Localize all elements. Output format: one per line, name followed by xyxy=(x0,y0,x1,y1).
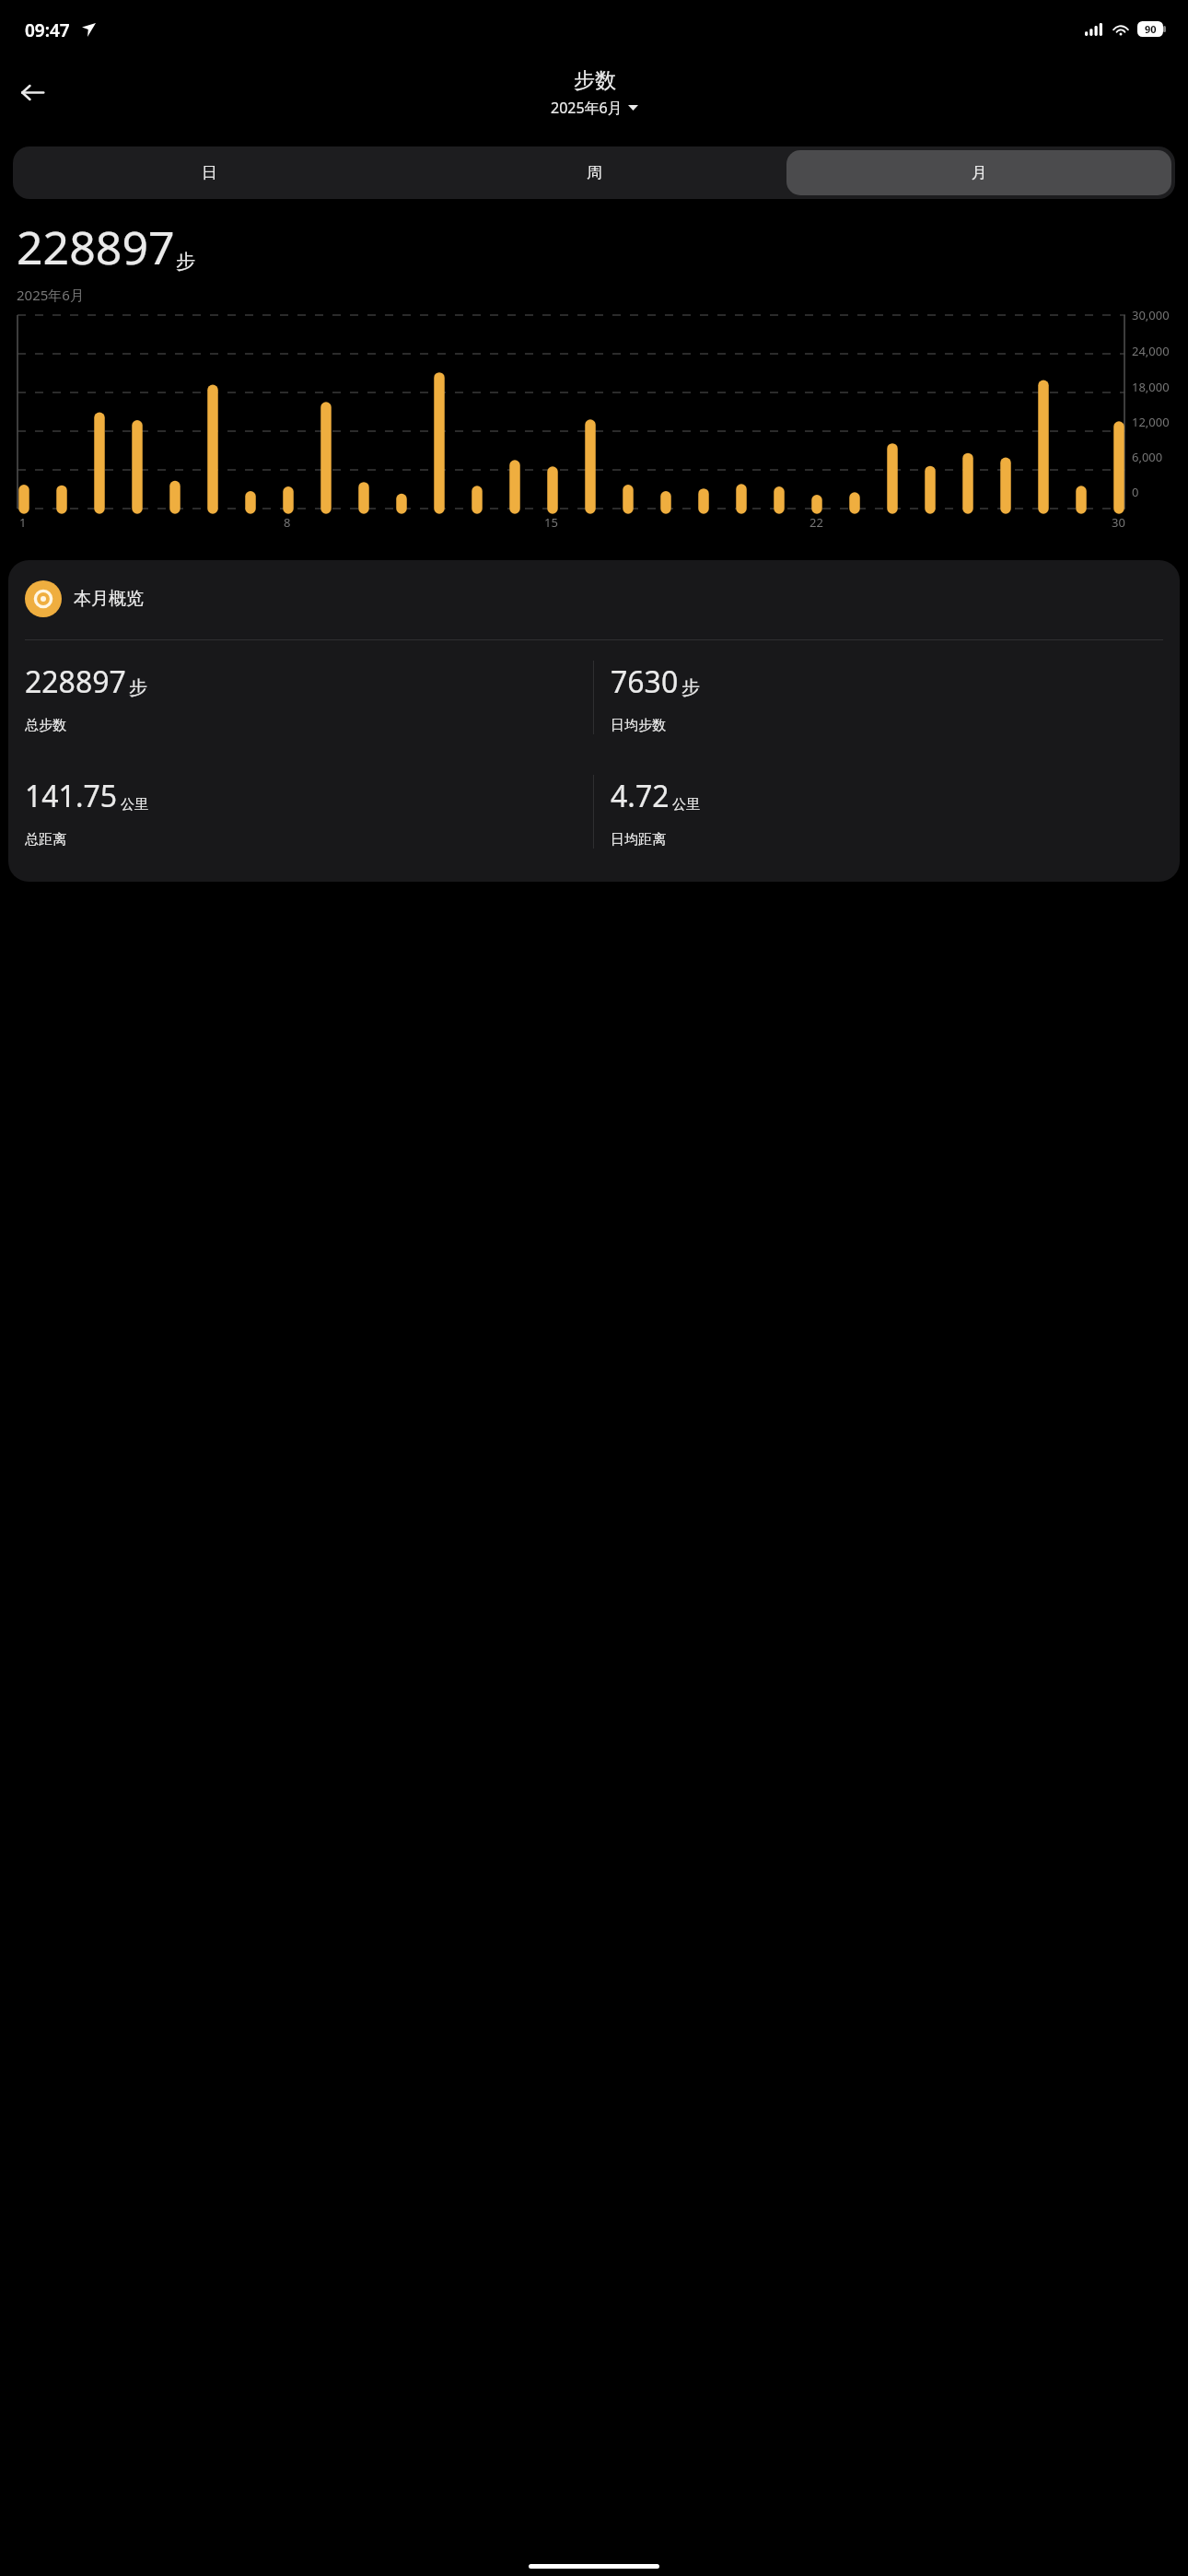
button[interactable]: 月 xyxy=(786,150,1171,195)
staticText: 日均步数 xyxy=(611,717,666,734)
staticText: 0 xyxy=(1132,484,1139,500)
staticText: 步 xyxy=(129,676,147,699)
staticText: 228897 xyxy=(25,662,126,702)
button[interactable]: 周 xyxy=(402,150,786,195)
button[interactable]: 日 xyxy=(17,150,402,195)
staticText: 12,000 xyxy=(1132,414,1170,430)
staticText: 22 xyxy=(809,514,823,531)
staticText: 2025年6月 xyxy=(551,98,623,118)
staticText: 日 xyxy=(202,163,217,182)
staticText: 18,000 xyxy=(1132,379,1170,395)
staticText: 月 xyxy=(972,163,987,182)
staticText: 09:47 xyxy=(25,18,70,42)
staticText: 228897 xyxy=(17,216,175,278)
staticText: 15 xyxy=(544,514,558,531)
staticText: 总距离 xyxy=(25,831,66,849)
staticText: 步 xyxy=(176,250,195,274)
button[interactable]: Back xyxy=(6,66,58,118)
staticText: 24,000 xyxy=(1132,343,1170,359)
staticText: 90 xyxy=(1145,22,1157,36)
button[interactable]: 本月概览 xyxy=(25,580,1163,617)
staticText: 步数 xyxy=(574,67,616,94)
staticText: 1 xyxy=(19,514,27,531)
staticText: 总步数 xyxy=(25,717,66,734)
staticText: 30,000 xyxy=(1132,307,1170,323)
staticText: 141.75 xyxy=(25,776,118,816)
staticText: 本月概览 xyxy=(74,588,144,610)
staticText: 公里 xyxy=(121,796,148,814)
button[interactable]: 2025年6月 xyxy=(551,98,638,118)
staticText: 7630 xyxy=(611,662,679,702)
staticText: 6,000 xyxy=(1132,449,1163,465)
staticText: 日均距离 xyxy=(611,831,666,849)
staticText: 公里 xyxy=(672,796,700,814)
staticText: 8 xyxy=(284,514,291,531)
staticText: 4.72 xyxy=(611,776,670,816)
staticText: 30 xyxy=(1112,514,1125,531)
staticText: 步 xyxy=(681,676,700,699)
staticText: 周 xyxy=(587,163,602,182)
staticText: 2025年6月 xyxy=(17,286,84,304)
